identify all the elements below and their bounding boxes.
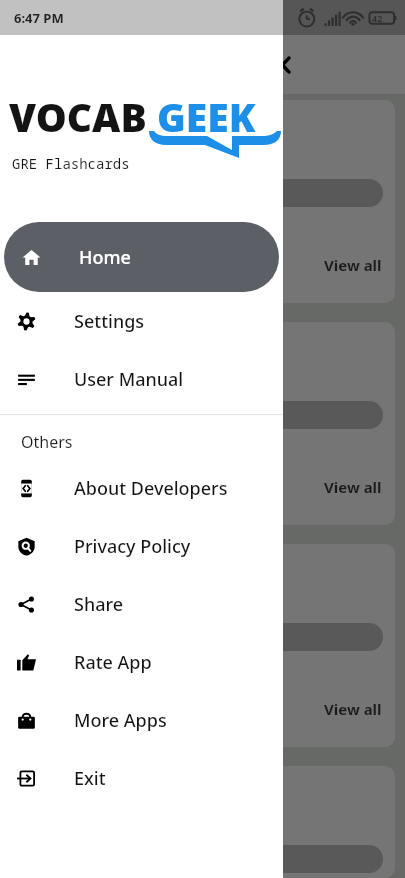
button[interactable]: View all — [10, 544, 395, 747]
staticText: 42 — [372, 12, 383, 24]
staticText: Others — [21, 431, 73, 453]
button[interactable]: Home — [4, 222, 279, 292]
button[interactable]: View all — [10, 322, 395, 525]
button[interactable]: Privacy Policy — [0, 517, 283, 575]
staticText: GRE Flashcards — [12, 154, 130, 173]
staticText: View all — [324, 477, 382, 497]
staticText: Share — [74, 592, 124, 617]
staticText: 6:47 PM — [14, 9, 64, 27]
staticText: About Developers — [74, 476, 228, 501]
staticText: View all — [324, 699, 382, 719]
button[interactable]: Settings — [0, 292, 283, 350]
staticText: GEEK — [157, 90, 256, 143]
staticText: View all — [324, 255, 382, 275]
staticText: Rate App — [74, 650, 152, 675]
button[interactable]: More Apps — [0, 691, 283, 749]
staticText: VOCAB — [9, 90, 147, 143]
button[interactable]: User Manual — [0, 350, 283, 408]
button[interactable]: About Developers — [0, 459, 283, 517]
staticText: More Apps — [74, 708, 167, 733]
button[interactable]: Rate App — [0, 633, 283, 691]
button[interactable]: View all — [10, 766, 395, 878]
button[interactable]: Exit — [0, 749, 283, 807]
button[interactable]: View all — [10, 100, 395, 303]
staticText: Exit — [74, 766, 106, 791]
staticText: User Manual — [74, 367, 184, 392]
staticText: Home — [79, 245, 131, 270]
staticText: Settings — [74, 309, 145, 334]
button[interactable]: Share — [0, 575, 283, 633]
staticText: Privacy Policy — [74, 534, 191, 559]
button[interactable]: Back — [268, 47, 304, 83]
